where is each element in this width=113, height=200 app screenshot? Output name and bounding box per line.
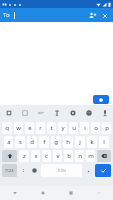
- button[interactable]: Google: [2, 106, 15, 119]
- button[interactable]: Stickers: [18, 106, 31, 119]
- staticText: m: [88, 152, 94, 160]
- button[interactable]: Shift: [2, 150, 17, 162]
- button[interactable]: Add contact: [93, 95, 109, 104]
- button[interactable]: i: [80, 122, 89, 134]
- staticText: n: [78, 152, 82, 160]
- button[interactable]: z: [19, 150, 29, 162]
- staticText: o: [94, 124, 98, 132]
- staticText: 0-EN: [58, 168, 66, 173]
- button[interactable]: h: [63, 136, 73, 148]
- button[interactable]: Settings: [66, 106, 79, 119]
- staticText: q: [5, 124, 9, 132]
- staticText: z: [23, 152, 26, 160]
- button[interactable]: ?123: [2, 164, 17, 177]
- button[interactable]: Translate: [50, 106, 63, 119]
- staticText: ?123: [5, 168, 14, 173]
- staticText: v: [56, 152, 60, 160]
- button[interactable]: Period: [84, 164, 93, 177]
- button[interactable]: a: [4, 136, 13, 148]
- button[interactable]: f: [39, 136, 49, 148]
- button[interactable]: 0-EN: [41, 164, 82, 177]
- button[interactable]: k: [87, 136, 97, 148]
- button[interactable]: GIF: [34, 106, 47, 119]
- button[interactable]: o: [91, 122, 100, 134]
- button[interactable]: Close: [99, 10, 110, 21]
- button[interactable]: c: [42, 150, 51, 162]
- button[interactable]: Home: [29, 186, 57, 200]
- staticText: u: [72, 124, 76, 132]
- button[interactable]: Enter: [95, 164, 111, 177]
- staticText: r: [39, 124, 42, 132]
- button[interactable]: g: [51, 136, 61, 148]
- button[interactable]: b: [64, 150, 73, 162]
- staticText: b: [67, 152, 71, 160]
- button[interactable]: Comma: [19, 164, 28, 177]
- button[interactable]: Recents: [57, 186, 85, 200]
- button[interactable]: v: [53, 150, 62, 162]
- button[interactable]: s: [15, 136, 25, 148]
- button[interactable]: t: [47, 122, 56, 134]
- button[interactable]: w: [14, 122, 23, 134]
- staticText: i: [84, 124, 86, 132]
- button[interactable]: Language: [30, 164, 39, 177]
- staticText: s: [19, 138, 22, 146]
- button[interactable]: l: [99, 136, 109, 148]
- staticText: p: [105, 124, 109, 132]
- staticText: x: [34, 152, 38, 160]
- staticText: To: [3, 11, 10, 19]
- button[interactable]: x: [31, 150, 40, 162]
- staticText: k: [90, 138, 94, 146]
- button[interactable]: q: [2, 122, 12, 134]
- button[interactable]: j: [75, 136, 85, 148]
- staticText: y: [61, 124, 65, 132]
- staticText: t: [50, 124, 53, 132]
- staticText: j: [79, 138, 81, 146]
- button[interactable]: u: [69, 122, 78, 134]
- staticText: f: [43, 138, 46, 146]
- button[interactable]: n: [75, 150, 84, 162]
- staticText: e: [28, 124, 32, 132]
- staticText: h: [66, 138, 70, 146]
- staticText: g: [54, 138, 58, 146]
- staticText: w: [16, 124, 21, 132]
- staticText: c: [45, 152, 48, 160]
- button[interactable]: p: [102, 122, 111, 134]
- button[interactable]: r: [36, 122, 45, 134]
- staticText: l: [103, 138, 105, 146]
- staticText: d: [30, 138, 34, 146]
- button[interactable]: Back: [0, 186, 29, 200]
- button[interactable]: Voice input: [98, 106, 111, 119]
- button[interactable]: Emoji: [82, 106, 95, 119]
- button[interactable]: Backspace: [97, 150, 111, 162]
- button[interactable]: Add person: [87, 10, 98, 21]
- button[interactable]: e: [25, 122, 34, 134]
- button[interactable]: y: [58, 122, 67, 134]
- button[interactable]: m: [86, 150, 95, 162]
- button[interactable]: d: [27, 136, 37, 148]
- staticText: a: [7, 138, 11, 146]
